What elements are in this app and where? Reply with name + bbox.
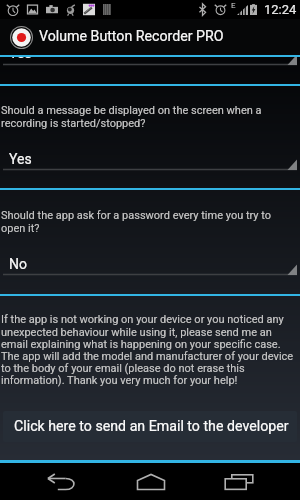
- staticText: Yes: [9, 57, 32, 61]
- button[interactable]: No: [0, 249, 300, 281]
- button[interactable]: Click here to send an Email to the devel…: [3, 411, 297, 442]
- staticText: E: [231, 1, 236, 10]
- staticText: 12:24: [264, 2, 297, 17]
- staticText: If the app is not working on your device…: [1, 313, 294, 386]
- staticText: Should a message be displayed on the scr…: [1, 104, 262, 129]
- staticText: Should the app ask for a password every …: [1, 209, 272, 234]
- button[interactable]: Yes: [0, 57, 300, 84]
- staticText: Yes: [9, 151, 32, 167]
- staticText: Click here to send an Email to the devel…: [14, 418, 289, 435]
- button[interactable]: Yes: [0, 144, 300, 176]
- staticText: Volume Button Recorder PRO: [39, 28, 224, 45]
- button[interactable]: Back: [32, 463, 92, 500]
- staticText: No: [9, 256, 27, 272]
- button[interactable]: Recent apps: [209, 463, 269, 500]
- button[interactable]: Home: [121, 463, 181, 500]
